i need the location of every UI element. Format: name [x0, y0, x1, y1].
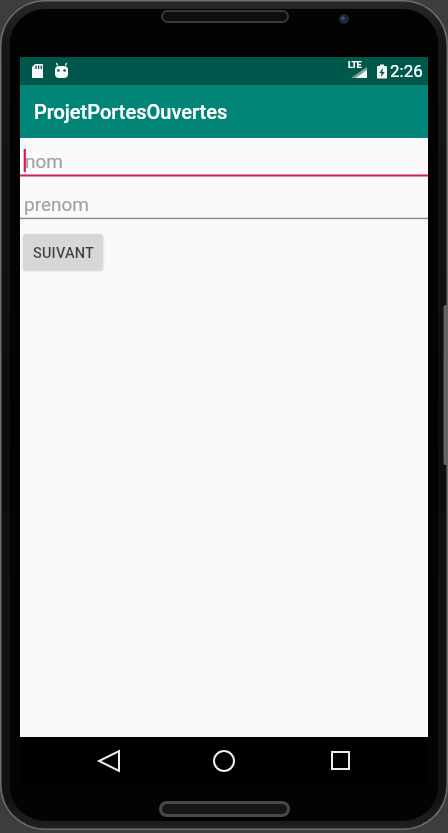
button[interactable]	[20, 184, 428, 221]
button[interactable]	[79, 741, 139, 781]
button[interactable]	[20, 140, 428, 177]
staticText: 2:26	[390, 61, 423, 81]
staticText: LTE	[348, 60, 362, 71]
button[interactable]	[194, 741, 254, 781]
staticText: ProjetPortesOuvertes	[34, 100, 228, 123]
button[interactable]: SUIVANT	[23, 234, 103, 270]
button[interactable]	[309, 741, 369, 781]
staticText: prenom	[24, 193, 89, 215]
staticText: nom	[25, 150, 63, 172]
staticText: SUIVANT	[33, 245, 95, 262]
